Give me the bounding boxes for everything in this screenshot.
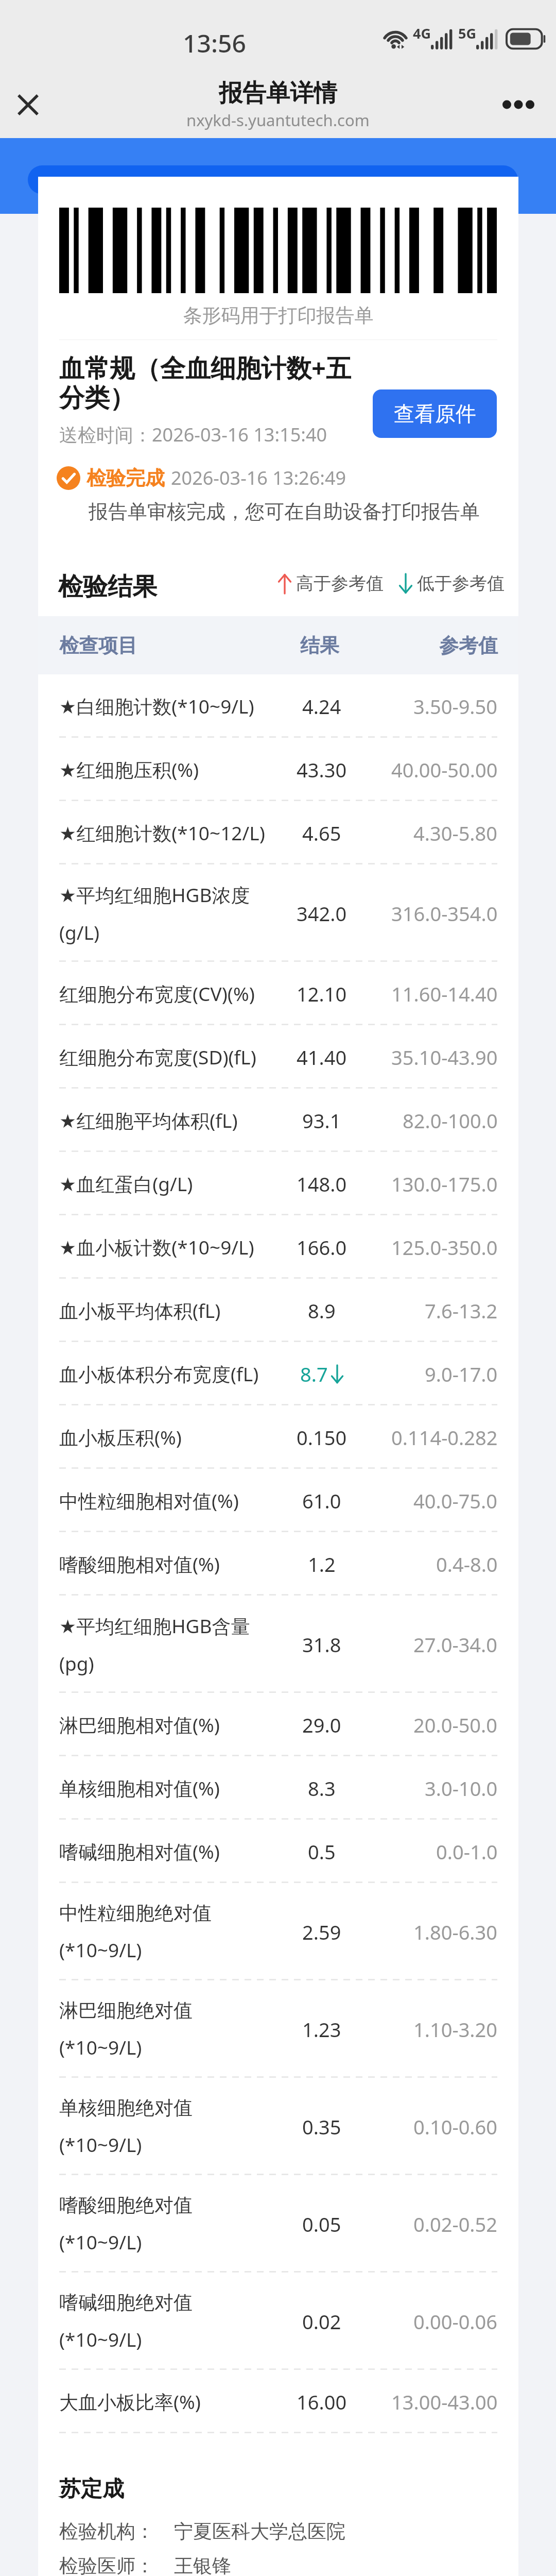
staticText: 82.0-100.0 — [403, 1107, 498, 1134]
staticText: 红细胞分布宽度(SD)(fL) — [59, 1044, 256, 1070]
staticText: 41.40 — [297, 1044, 347, 1071]
staticText: 送检时间：2026-03-16 13:15:40 — [59, 422, 327, 447]
staticText: 中性粒细胞绝对值 — [59, 1901, 212, 1925]
button[interactable]: 单核细胞绝对值 — [38, 2078, 518, 2175]
staticText: 61.0 — [302, 1487, 341, 1514]
staticText: 43.30 — [297, 756, 347, 783]
staticText: 4.65 — [302, 820, 341, 846]
button[interactable]: 中性粒细胞绝对值 — [38, 1883, 518, 1980]
staticText: 130.0-175.0 — [391, 1171, 498, 1197]
staticText: ★平均红细胞HGB含量 — [59, 1613, 250, 1639]
staticText: 检验机构： — [59, 2519, 154, 2544]
staticText: 嗜碱细胞绝对值 — [59, 2291, 193, 2315]
staticText: 4.24 — [302, 693, 341, 720]
staticText: (pg) — [59, 1650, 94, 1676]
staticText: 条形码用于打印报告单 — [38, 303, 518, 328]
button[interactable]: 红细胞分布宽度(CV)(%) — [38, 962, 518, 1025]
staticText: 淋巴细胞相对值(%) — [59, 1711, 220, 1738]
staticText: (*10~9/L) — [59, 2229, 142, 2255]
staticText: 148.0 — [297, 1171, 347, 1197]
staticText: nxykd-s.yuantutech.com — [186, 109, 370, 131]
staticText: 4G — [413, 24, 431, 43]
staticText: ★血小板计数(*10~9/L) — [59, 1234, 254, 1260]
staticText: 3.50-9.50 — [413, 693, 498, 720]
button[interactable]: 血小板压积(%) — [38, 1405, 518, 1469]
staticText: 检验医师： — [59, 2554, 154, 2576]
staticText: 12.10 — [297, 980, 347, 1007]
staticText: 结果 — [300, 633, 339, 658]
staticText: 0.35 — [302, 2113, 341, 2140]
staticText: ★红细胞压积(%) — [59, 756, 199, 783]
staticText: ★平均红细胞HGB浓度 — [59, 882, 250, 908]
staticText: 0.4-8.0 — [436, 1551, 498, 1578]
staticText: 参考值 — [439, 633, 498, 658]
staticText: 2.59 — [302, 1919, 341, 1945]
staticText: 2026-03-16 13:26:49 — [171, 465, 346, 490]
button[interactable]: Close — [6, 83, 49, 126]
staticText: 166.0 — [297, 1234, 347, 1261]
staticText: 1.23 — [302, 2016, 341, 2043]
staticText: 0.5 — [308, 1838, 336, 1865]
staticText: 0.02 — [302, 2308, 341, 2335]
button[interactable]: 淋巴细胞绝对值 — [38, 1980, 518, 2078]
button[interactable]: 淋巴细胞相对值(%) — [38, 1693, 518, 1756]
staticText: 29.0 — [302, 1711, 341, 1738]
staticText: ★红细胞平均体积(fL) — [59, 1107, 238, 1133]
staticText: 31.8 — [302, 1631, 341, 1658]
button[interactable]: ★平均红细胞HGB浓度 — [38, 865, 518, 962]
staticText: 0.00-0.06 — [413, 2308, 498, 2335]
staticText: (*10~9/L) — [59, 2326, 142, 2352]
staticText: 血小板平均体积(fL) — [59, 1297, 221, 1324]
staticText: 报告单审核完成，您可在自助设备打印报告单 — [89, 499, 480, 524]
staticText: 93.1 — [302, 1107, 341, 1134]
staticText: 血小板体积分布宽度(fL) — [59, 1361, 259, 1387]
staticText: 8.7 — [300, 1361, 328, 1387]
button[interactable]: 红细胞分布宽度(SD)(fL) — [38, 1025, 518, 1089]
button[interactable]: ★红细胞平均体积(fL) — [38, 1089, 518, 1152]
staticText: 嗜酸细胞相对值(%) — [59, 1551, 220, 1577]
button[interactable]: 查看原件 — [373, 389, 497, 438]
button[interactable]: 血小板体积分布宽度(fL) — [38, 1342, 518, 1405]
staticText: 淋巴细胞绝对值 — [59, 1998, 193, 2023]
staticText: 13.00-43.00 — [391, 2388, 498, 2415]
button[interactable]: ★平均红细胞HGB含量 — [38, 1596, 518, 1693]
button[interactable]: ★白细胞计数(*10~9/L) — [38, 674, 518, 738]
button[interactable]: 大血小板比率(%) — [38, 2370, 518, 2433]
staticText: 0.150 — [297, 1424, 347, 1451]
staticText: (*10~9/L) — [59, 2131, 142, 2157]
staticText: 0.10-0.60 — [413, 2113, 498, 2140]
staticText: 8.3 — [308, 1775, 336, 1802]
button[interactable]: 中性粒细胞相对值(%) — [38, 1469, 518, 1532]
button[interactable]: More options — [497, 83, 540, 126]
staticText: 1.80-6.30 — [413, 1919, 498, 1945]
button[interactable]: ★血小板计数(*10~9/L) — [38, 1215, 518, 1279]
button[interactable]: 单核细胞相对值(%) — [38, 1756, 518, 1820]
staticText: 0.02-0.52 — [413, 2211, 498, 2238]
staticText: 检验结果 — [58, 571, 157, 602]
staticText: 血小板压积(%) — [59, 1424, 182, 1450]
staticText: 查看原件 — [394, 401, 476, 427]
staticText: 单核细胞绝对值 — [59, 2096, 193, 2120]
button[interactable]: ★红细胞计数(*10~12/L) — [38, 801, 518, 865]
staticText: (*10~9/L) — [59, 1937, 142, 1962]
staticText: 13:56 — [183, 26, 246, 60]
button[interactable]: 嗜酸细胞相对值(%) — [38, 1532, 518, 1596]
staticText: 王银锋 — [174, 2554, 231, 2576]
button[interactable]: ★红细胞压积(%) — [38, 738, 518, 801]
staticText: 1.2 — [308, 1551, 336, 1578]
staticText: 1.10-3.20 — [413, 2016, 498, 2043]
staticText: 27.0-34.0 — [413, 1631, 498, 1658]
staticText: 检查项目 — [59, 633, 137, 658]
staticText: 35.10-43.90 — [391, 1044, 498, 1071]
button[interactable]: ★血红蛋白(g/L) — [38, 1152, 518, 1215]
button[interactable]: 嗜酸细胞绝对值 — [38, 2175, 518, 2273]
button[interactable]: 嗜碱细胞相对值(%) — [38, 1820, 518, 1883]
staticText: 4.30-5.80 — [413, 820, 498, 846]
staticText: 血常规（全血细胞计数+五分类） — [59, 350, 368, 414]
staticText: 3.0-10.0 — [425, 1775, 498, 1802]
button[interactable]: 嗜碱细胞绝对值 — [38, 2273, 518, 2370]
button[interactable]: 血小板平均体积(fL) — [38, 1279, 518, 1342]
staticText: 嗜酸细胞绝对值 — [59, 2193, 193, 2217]
staticText: 中性粒细胞相对值(%) — [59, 1487, 239, 1514]
staticText: 11.60-14.40 — [391, 980, 498, 1007]
